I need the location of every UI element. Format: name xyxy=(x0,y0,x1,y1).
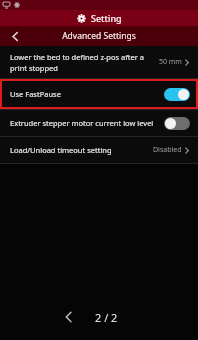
button[interactable]: Previous page xyxy=(55,304,81,330)
button[interactable]: Lower the bed to defined z-pos after a p… xyxy=(0,46,198,78)
button[interactable]: Use FastPause xyxy=(0,79,198,109)
staticText: Use FastPause xyxy=(10,89,164,99)
button[interactable]: Extruder stepper motor current low level xyxy=(0,110,198,136)
staticText: Lower the bed to defined z-pos after a p… xyxy=(10,52,155,73)
staticText: Load/Unload timeout setting xyxy=(10,145,149,155)
staticText: Disabled xyxy=(153,145,182,155)
button[interactable]: Switch off xyxy=(164,117,190,130)
button[interactable]: Load/Unload timeout setting xyxy=(0,137,198,163)
staticText: Setting xyxy=(91,12,122,24)
staticText: Advanced Settings xyxy=(62,30,136,42)
button[interactable]: Back xyxy=(0,26,30,46)
button[interactable]: Switch on xyxy=(164,88,190,101)
staticText: 2 / 2 xyxy=(95,310,118,325)
staticText: 50 mm xyxy=(159,57,182,67)
staticText: Extruder stepper motor current low level xyxy=(10,118,160,128)
